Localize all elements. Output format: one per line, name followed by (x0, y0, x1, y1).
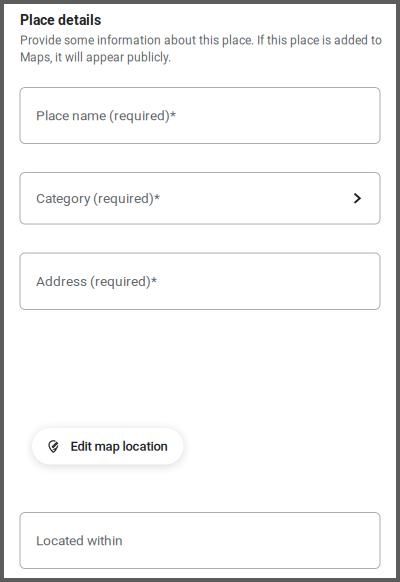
staticText: Located within (36, 532, 123, 548)
staticText: Place name (required)* (36, 107, 176, 123)
staticText: Edit map location (70, 439, 167, 454)
staticText: Address (required)* (36, 273, 157, 289)
button[interactable]: Located within (20, 512, 380, 568)
button[interactable]: Address (required)* (20, 253, 380, 309)
button[interactable]: Category (required)* (20, 172, 380, 224)
staticText: Provide some information about this plac… (20, 33, 382, 64)
button[interactable]: Place name (required)* (20, 87, 380, 143)
button[interactable]: Edit map location (32, 428, 183, 464)
staticText: Place details (20, 12, 101, 28)
staticText: Category (required)* (36, 190, 160, 206)
